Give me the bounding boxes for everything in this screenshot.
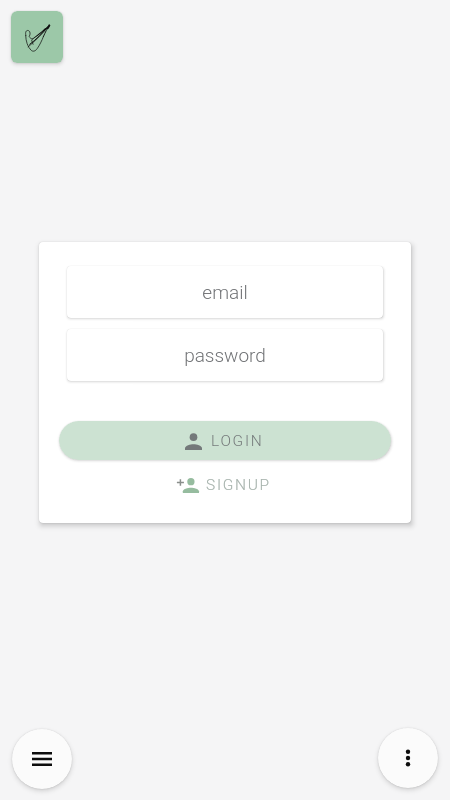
button[interactable]: App logo — [11, 11, 63, 63]
staticText: email — [202, 281, 248, 303]
button[interactable]: LOGIN — [59, 421, 391, 460]
button[interactable]: SIGNUP — [39, 467, 411, 503]
button[interactable]: email — [67, 266, 383, 318]
button[interactable]: password — [67, 329, 383, 381]
staticText: LOGIN — [211, 432, 264, 450]
staticText: SIGNUP — [206, 476, 271, 494]
button[interactable]: Menu — [12, 729, 72, 789]
staticText: password — [184, 344, 266, 366]
button[interactable]: More options — [378, 728, 438, 788]
